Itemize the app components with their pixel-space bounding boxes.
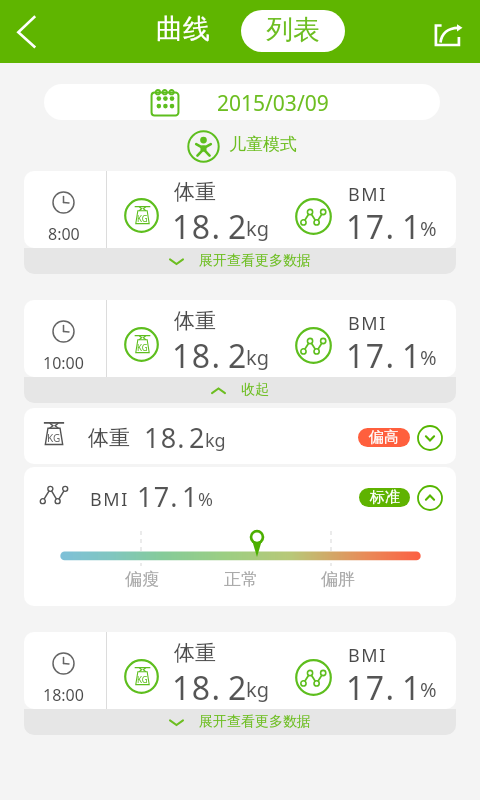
staticText: kg <box>246 215 269 242</box>
staticText: 正常 <box>224 569 258 590</box>
staticText: % <box>198 487 213 512</box>
staticText: 18. <box>144 419 186 456</box>
staticText: 收起 <box>241 381 269 399</box>
staticText: 儿童模式 <box>229 134 297 155</box>
staticText: BMI <box>90 487 129 512</box>
staticText: kg <box>205 428 226 453</box>
staticText: 18. <box>172 666 222 709</box>
button[interactable]: 儿童模式 <box>187 129 297 162</box>
staticText: 偏瘦 <box>125 569 159 590</box>
staticText: KG <box>47 431 61 445</box>
staticText: 偏胖 <box>321 569 355 590</box>
staticText: % <box>420 215 437 242</box>
staticText: 体重 <box>174 308 216 334</box>
button[interactable]: 展开查看更多数据 <box>24 248 456 274</box>
button[interactable]: 曲线 <box>148 9 218 51</box>
staticText: KG <box>137 213 148 224</box>
button[interactable]: BMI <box>24 467 456 523</box>
staticText: 10:00 <box>43 352 84 374</box>
staticText: KG <box>137 342 148 353</box>
staticText: BMI <box>348 182 387 207</box>
staticText: 1 <box>402 666 422 709</box>
staticText: 2015/03/09 <box>217 89 329 118</box>
staticText: 2 <box>228 666 248 709</box>
staticText: 体重 <box>88 425 130 451</box>
staticText: 体重 <box>174 179 216 205</box>
staticText: 1 <box>402 205 422 248</box>
staticText: % <box>420 344 437 371</box>
staticText: 1 <box>402 334 422 377</box>
staticText: 17. <box>346 666 396 709</box>
staticText: 体重 <box>174 640 216 666</box>
staticText: 2 <box>228 205 248 248</box>
button[interactable]: Share <box>427 12 467 52</box>
staticText: 2 <box>228 334 248 377</box>
staticText: 展开查看更多数据 <box>199 713 311 731</box>
button[interactable]: 收起 <box>24 377 456 403</box>
staticText: BMI <box>348 643 387 668</box>
staticText: 8:00 <box>48 223 80 245</box>
button[interactable]: Collapse BMI <box>417 485 443 511</box>
staticText: 曲线 <box>156 12 210 46</box>
staticText: 17. <box>346 205 396 248</box>
staticText: % <box>420 676 437 703</box>
staticText: 17. <box>346 334 396 377</box>
button[interactable]: 展开查看更多数据 <box>24 709 456 735</box>
staticText: kg <box>246 676 269 703</box>
button[interactable]: Expand weight <box>417 425 443 451</box>
staticText: 偏高 <box>369 428 399 447</box>
button[interactable]: Back <box>8 9 53 54</box>
staticText: 1 <box>182 478 199 515</box>
staticText: kg <box>246 344 269 371</box>
button[interactable]: 列表 <box>241 10 345 52</box>
staticText: 18. <box>172 334 222 377</box>
staticText: 2 <box>189 419 206 456</box>
staticText: 标准 <box>370 488 400 507</box>
staticText: 17. <box>137 478 179 515</box>
staticText: BMI <box>348 311 387 336</box>
button[interactable]: 2015/03/09 <box>44 84 440 120</box>
staticText: 展开查看更多数据 <box>199 252 311 270</box>
staticText: 18:00 <box>43 684 84 706</box>
staticText: 列表 <box>266 13 320 47</box>
staticText: KG <box>137 674 148 685</box>
button[interactable]: KG <box>24 408 456 464</box>
staticText: 18. <box>172 205 222 248</box>
